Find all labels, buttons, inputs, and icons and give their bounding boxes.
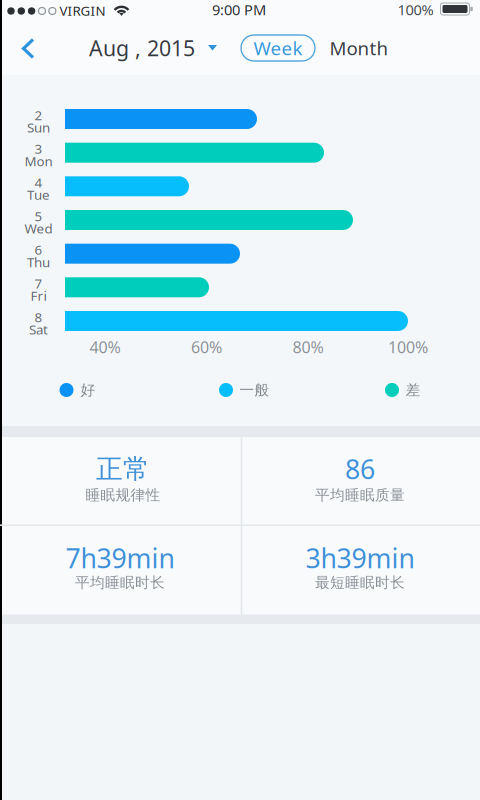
staticText: 最短睡眠时长 [315, 573, 405, 591]
staticText: Tue [27, 186, 50, 203]
staticText: 8 [34, 308, 42, 326]
staticText: 9:00 PM [212, 0, 266, 19]
button[interactable]: Week [241, 35, 315, 61]
staticText: Fri [30, 287, 46, 304]
staticText: Sun [27, 118, 50, 136]
staticText: 7h39min [65, 540, 174, 576]
staticText: 86 [345, 451, 375, 487]
staticText: 正常 [96, 453, 150, 485]
staticText: Week [253, 36, 302, 60]
staticText: 2 [34, 106, 42, 124]
staticText: VIRGIN [59, 2, 105, 19]
staticText: Wed [24, 219, 52, 237]
staticText: 一般 [239, 381, 269, 399]
staticText: 80% [292, 336, 323, 358]
button[interactable]: Back [20, 38, 36, 59]
staticText: 6 [34, 241, 42, 258]
staticText: 平均睡眠时长 [75, 573, 165, 591]
staticText: Mon [24, 152, 52, 170]
staticText: 7 [34, 274, 42, 292]
staticText: Aug , 2015 [89, 34, 195, 62]
staticText: 睡眠规律性 [85, 486, 160, 504]
staticText: Thu [27, 253, 50, 271]
staticText: 3 [34, 140, 42, 157]
staticText: 100% [388, 336, 428, 358]
staticText: 100% [397, 0, 433, 19]
staticText: 3h39min [305, 540, 414, 576]
staticText: Month [329, 36, 388, 60]
staticText: 5 [34, 207, 42, 225]
button[interactable]: Month [324, 35, 394, 61]
staticText: 好 [80, 381, 95, 399]
staticText: 4 [34, 173, 42, 191]
staticText: 60% [191, 336, 222, 358]
staticText: 差 [405, 381, 420, 399]
staticText: Sat [29, 320, 48, 338]
staticText: 40% [89, 336, 120, 358]
button[interactable]: Select month [89, 34, 217, 62]
staticText: 平均睡眠质量 [315, 486, 405, 504]
